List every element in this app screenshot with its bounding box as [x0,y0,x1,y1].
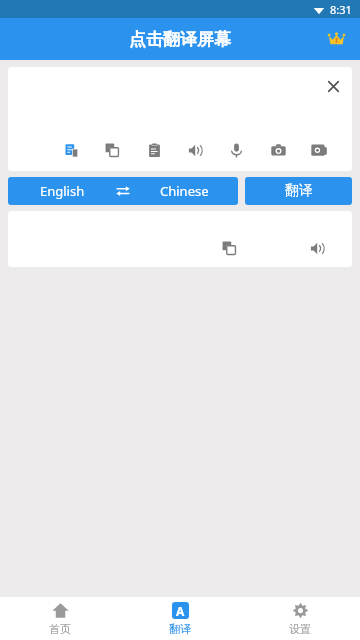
button[interactable]: Speak result [300,231,334,265]
button[interactable]: Voice input [219,133,253,167]
button[interactable]: Camera [261,133,295,167]
button[interactable]: Copy result [212,231,246,265]
staticText: 首页 [49,622,71,636]
staticText: 8:31 [330,2,352,17]
button[interactable]: Copy [95,133,129,167]
button[interactable]: Home [0,597,120,640]
button[interactable]: Paste [137,133,171,167]
button[interactable]: English [8,177,238,205]
staticText: 翻译 [169,622,191,636]
button[interactable]: Settings [240,597,360,640]
button[interactable]: Photo [302,133,336,167]
button[interactable]: Clear [320,73,346,99]
staticText: English [40,182,85,200]
button[interactable]: Translate document [54,133,88,167]
button[interactable]: 翻译 [245,177,352,205]
button[interactable]: VIP [320,23,352,55]
button[interactable]: Speak [178,133,212,167]
staticText: A [176,603,185,619]
staticText: 翻译 [285,182,313,200]
staticText: Chinese [160,182,209,200]
button[interactable]: Translate [120,597,240,640]
staticText: 点击翻译屏幕 [129,29,231,50]
staticText: 设置 [289,622,311,636]
